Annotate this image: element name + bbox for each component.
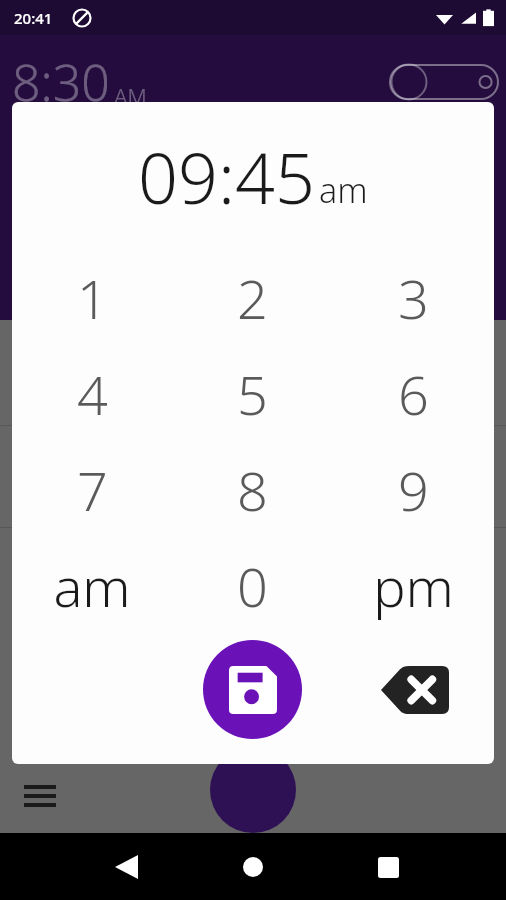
- staticText: pm: [373, 549, 454, 623]
- button[interactable]: pm: [333, 538, 494, 634]
- staticText: 09:45: [138, 129, 315, 224]
- button[interactable]: 8: [172, 442, 333, 538]
- button[interactable]: Add alarm: [210, 747, 296, 833]
- staticText: 8: [237, 453, 268, 527]
- button[interactable]: Back: [102, 843, 150, 891]
- button[interactable]: 7: [12, 442, 172, 538]
- button[interactable]: Menu: [16, 772, 64, 820]
- staticText: AM: [114, 81, 147, 111]
- staticText: 8:30: [12, 48, 110, 116]
- staticText: 6: [398, 357, 429, 431]
- staticText: 20:41: [14, 8, 53, 28]
- staticText: 0: [237, 549, 268, 623]
- button[interactable]: 3: [333, 250, 494, 346]
- button[interactable]: Backspace: [369, 655, 461, 725]
- staticText: am: [319, 167, 368, 213]
- staticText: am: [53, 549, 131, 623]
- button[interactable]: Toggle alarm: [388, 63, 500, 101]
- button[interactable]: 2: [172, 250, 333, 346]
- button[interactable]: Save: [203, 640, 302, 739]
- button[interactable]: 4: [12, 346, 172, 442]
- button[interactable]: 6: [333, 346, 494, 442]
- button[interactable]: 0: [172, 538, 333, 634]
- button[interactable]: 9: [333, 442, 494, 538]
- button[interactable]: am: [12, 538, 172, 634]
- staticText: 9: [398, 453, 429, 527]
- staticText: 7: [77, 453, 108, 527]
- staticText: 3: [398, 261, 429, 335]
- button[interactable]: Home: [229, 843, 277, 891]
- staticText: 5: [237, 357, 268, 431]
- staticText: 2: [237, 261, 268, 335]
- button[interactable]: Recent apps: [364, 843, 412, 891]
- staticText: 1: [77, 261, 108, 335]
- button[interactable]: 1: [12, 250, 172, 346]
- staticText: 4: [77, 357, 108, 431]
- button[interactable]: 5: [172, 346, 333, 442]
